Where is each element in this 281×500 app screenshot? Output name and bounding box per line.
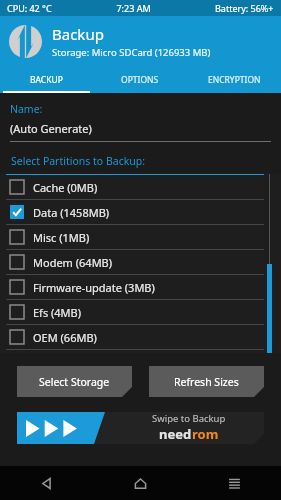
button[interactable]: Misc (1MB): [0, 225, 281, 249]
staticText: rom: [192, 425, 219, 443]
staticText: Data (1458MB): [33, 205, 110, 220]
staticText: Backup: [52, 24, 104, 44]
staticText: CPU: 42 °C: [7, 2, 52, 14]
staticText: ENCRYPTION: [208, 74, 261, 86]
button[interactable]: BACKUP: [0, 66, 93, 93]
staticText: OEM (66MB): [33, 330, 97, 345]
button[interactable]: Home: [93, 466, 187, 500]
staticText: Refresh Sizes: [174, 375, 239, 389]
staticText: Misc (1MB): [33, 230, 90, 245]
button[interactable]: ENCRYPTION: [187, 66, 281, 93]
button[interactable]: OPTIONS: [93, 66, 187, 93]
staticText: Select Partitions to Backup:: [11, 154, 146, 168]
button[interactable]: Data (1458MB): [0, 200, 281, 224]
staticText: Modem (64MB): [33, 255, 113, 270]
staticText: Efs (4MB): [33, 305, 82, 320]
button[interactable]: Refresh Sizes: [149, 366, 264, 397]
button[interactable]: Select Storage: [17, 366, 132, 397]
button[interactable]: Cache (0MB): [0, 175, 281, 199]
staticText: OPTIONS: [121, 74, 159, 86]
button[interactable]: Back: [0, 466, 93, 500]
staticText: Storage: Micro SDCard (126933 MB): [52, 46, 211, 59]
staticText: Firmware-update (3MB): [33, 280, 155, 295]
staticText: 7:23 AM: [52, 2, 215, 14]
button[interactable]: Modem (64MB): [0, 250, 281, 274]
button[interactable]: Firmware-update (3MB): [0, 275, 281, 299]
staticText: need: [159, 425, 192, 443]
button[interactable]: Swipe to Backup: [17, 412, 264, 444]
button[interactable]: (Auto Generate): [10, 121, 271, 142]
staticText: (Auto Generate): [10, 121, 92, 136]
staticText: Select Storage: [39, 375, 110, 389]
staticText: Cache (0MB): [33, 180, 98, 195]
staticText: Name:: [10, 102, 43, 116]
button[interactable]: Menu: [187, 466, 281, 500]
staticText: Swipe to Backup: [152, 412, 226, 425]
button[interactable]: OEM (66MB): [0, 325, 281, 349]
button[interactable]: Efs (4MB): [0, 300, 281, 324]
staticText: BACKUP: [30, 74, 63, 86]
staticText: Battery: 56%+: [215, 2, 274, 14]
